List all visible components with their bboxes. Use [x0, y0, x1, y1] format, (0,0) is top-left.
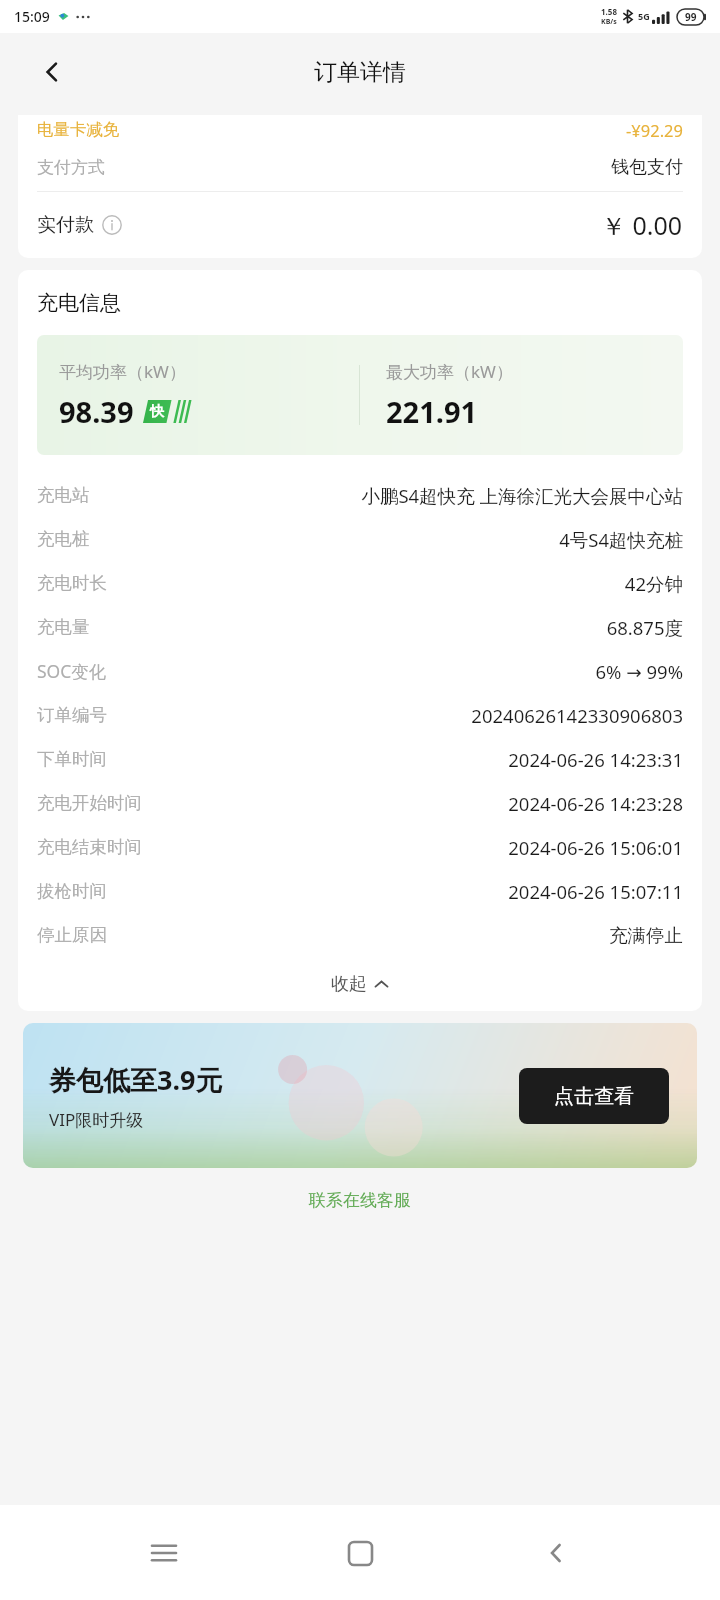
staticText: 充电桩 — [37, 528, 90, 550]
staticText: 收起 — [331, 973, 367, 996]
staticText: 6% → 99% — [595, 659, 683, 684]
button[interactable]: 券包低至3.9元 — [23, 1023, 697, 1168]
staticText: 订单编号 — [37, 704, 107, 726]
staticText: SOC变化 — [37, 659, 107, 683]
button[interactable]: 联系在线客服 — [295, 1184, 425, 1217]
staticText: 充电时长 — [37, 572, 107, 594]
staticText: 联系在线客服 — [309, 1190, 411, 1211]
staticText: 42分钟 — [624, 571, 683, 596]
staticText: 下单时间 — [37, 748, 107, 770]
staticText: 实付款 — [37, 213, 94, 237]
staticText: 快 — [150, 403, 164, 421]
staticText: 68.875度 — [606, 615, 683, 640]
staticText: 5G — [638, 10, 650, 22]
staticText: 2024-06-26 15:07:11 — [508, 879, 683, 904]
staticText: 平均功率（kW） — [59, 360, 186, 383]
staticText: 最大功率（kW） — [386, 360, 513, 383]
button[interactable]: Back — [30, 50, 74, 94]
staticText: 充电量 — [37, 616, 90, 638]
staticText: -¥92.29 — [626, 119, 683, 141]
staticText: 点击查看 — [554, 1084, 634, 1109]
staticText: 钱包支付 — [611, 156, 683, 179]
button[interactable]: 收起 — [37, 957, 683, 1011]
staticText: 221.91 — [386, 392, 478, 431]
staticText: 2024-06-26 15:06:01 — [508, 835, 683, 860]
button[interactable]: Info — [101, 214, 123, 236]
staticText: 电量卡减免 — [37, 119, 120, 140]
staticText: 充电开始时间 — [37, 792, 142, 814]
staticText: 2024-06-26 14:23:28 — [508, 791, 683, 816]
staticText: 充满停止 — [609, 924, 683, 947]
staticText: VIP限时升级 — [49, 1108, 144, 1131]
staticText: 20240626142330906803 — [471, 703, 683, 728]
staticText: 订单详情 — [314, 58, 406, 87]
staticText: KB/s — [601, 17, 617, 27]
staticText: 98.39 — [59, 392, 134, 431]
button[interactable]: Recents — [132, 1521, 196, 1585]
staticText: 充电信息 — [37, 290, 121, 316]
staticText: ￥ 0.00 — [601, 208, 683, 242]
staticText: 2024-06-26 14:23:31 — [508, 747, 683, 772]
staticText: 4号S4超快充桩 — [559, 527, 683, 552]
staticText: 拔枪时间 — [37, 880, 107, 902]
staticText: 充电结束时间 — [37, 836, 142, 858]
staticText: 券包低至3.9元 — [49, 1061, 223, 1098]
staticText: 支付方式 — [37, 157, 105, 178]
staticText: 1.58 — [601, 6, 617, 17]
staticText: 小鹏S4超快充 上海徐汇光大会展中心站 — [361, 483, 683, 508]
staticText: 99 — [685, 10, 697, 24]
staticText: 充电站 — [37, 484, 90, 506]
button[interactable]: Home — [328, 1521, 392, 1585]
staticText: 15:09 — [14, 7, 50, 26]
button[interactable]: Back — [524, 1521, 588, 1585]
button[interactable]: 点击查看 — [519, 1068, 669, 1124]
staticText: 停止原因 — [37, 924, 107, 946]
